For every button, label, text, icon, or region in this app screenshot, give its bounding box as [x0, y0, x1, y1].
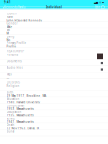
button[interactable]: Primary Profile: [0, 41, 108, 48]
staticText: Occupation: [6, 110, 21, 114]
staticText: No: [6, 38, 10, 42]
button[interactable]: Occupation: [0, 110, 108, 117]
staticText: Birth: [6, 91, 13, 94]
staticText: 29 May 1917, Brookline, MA: [6, 94, 46, 98]
staticText: Gender: [6, 22, 17, 25]
button[interactable]: Education: [0, 97, 108, 104]
button[interactable]: Documents: [0, 59, 108, 66]
staticText: ‹: [2, 5, 3, 10]
button[interactable]: Religion: [0, 84, 108, 91]
staticText: 9:41: [4, 0, 11, 4]
button[interactable]: Gender: [0, 22, 108, 28]
staticText: Living: [6, 35, 14, 38]
staticText: Religion: [6, 84, 19, 88]
staticText: Name: [6, 15, 13, 19]
button[interactable]: Edit: [95, 5, 108, 9]
button[interactable]: Persona: [0, 53, 108, 59]
staticText: IDENTITY: [6, 12, 17, 15]
staticText: Male: [6, 25, 12, 29]
staticText: Edit: [95, 5, 100, 9]
staticText: 1941, Massachusetts: [6, 120, 33, 124]
staticText: 22 Nov 1963, Dallas, TX: [6, 127, 39, 130]
staticText: Tags: [6, 72, 11, 76]
staticText: —: [6, 76, 9, 79]
staticText: M: [6, 32, 8, 35]
button[interactable]: Congressman: [0, 104, 108, 110]
button[interactable]: Birth: [0, 91, 108, 97]
staticText: Sex: [6, 28, 9, 32]
staticText: Death: [6, 123, 14, 127]
button[interactable]: Audio Files: [0, 66, 108, 72]
staticText: Congressman: [6, 104, 24, 107]
staticText: Documents: [6, 59, 21, 63]
staticText: Profile: [6, 45, 16, 48]
button[interactable]: Living: [0, 35, 108, 41]
staticText: Education: [6, 97, 19, 101]
button[interactable]: ‹: [0, 5, 25, 10]
staticText: Audio Files: [6, 66, 22, 69]
staticText: 1935, Massachusetts: [6, 114, 33, 117]
staticText: ▃▅ ᯤ ▰: [94, 0, 104, 4]
staticText: Individual: [46, 5, 62, 9]
button[interactable]: Death: [0, 123, 108, 130]
staticText: Persona: [6, 53, 17, 56]
staticText: RELATIONSHIP: [6, 49, 24, 53]
button[interactable]: Tags: [0, 72, 108, 79]
button[interactable]: Sex: [0, 28, 108, 35]
staticText: Primary Profile: [6, 41, 26, 45]
staticText: LIFE EVENTS: [6, 81, 19, 84]
staticText: 1953, Massachusetts: [6, 107, 33, 111]
staticText: Kennedy Family: [4, 5, 25, 9]
staticText: Service: [6, 117, 15, 120]
button[interactable]: Name: [0, 15, 108, 22]
staticText: John Fitzgerald Kennedy: [6, 19, 41, 22]
button[interactable]: Burial: [0, 130, 108, 136]
staticText: Burial: [6, 130, 14, 133]
staticText: 1940, Harvard University: [6, 101, 39, 104]
button[interactable]: Service: [0, 117, 108, 123]
